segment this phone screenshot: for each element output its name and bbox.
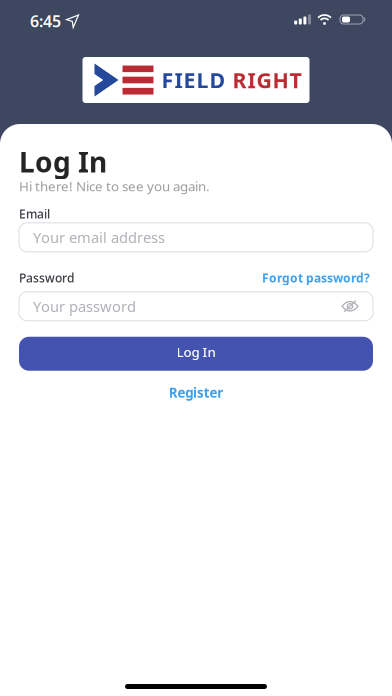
- staticText: Register: [169, 384, 223, 401]
- staticText: Forgot password?: [262, 270, 370, 286]
- staticText: Log In: [176, 343, 215, 361]
- button[interactable]: Forgot password?: [262, 270, 373, 286]
- button[interactable]: Log In: [19, 337, 373, 371]
- staticText: 6:45: [30, 10, 61, 32]
- staticText: RIGHT: [232, 66, 301, 94]
- staticText: Your password: [33, 296, 136, 316]
- button[interactable]: Register: [169, 384, 223, 401]
- staticText: Hi there! Nice to see you again.: [19, 177, 210, 195]
- staticText: FIELD: [161, 66, 225, 94]
- staticText: Your email address: [33, 228, 165, 247]
- staticText: Email: [19, 206, 50, 222]
- staticText: Log In: [19, 143, 107, 180]
- staticText: Password: [19, 270, 74, 286]
- button[interactable]: Show password: [341, 300, 359, 312]
